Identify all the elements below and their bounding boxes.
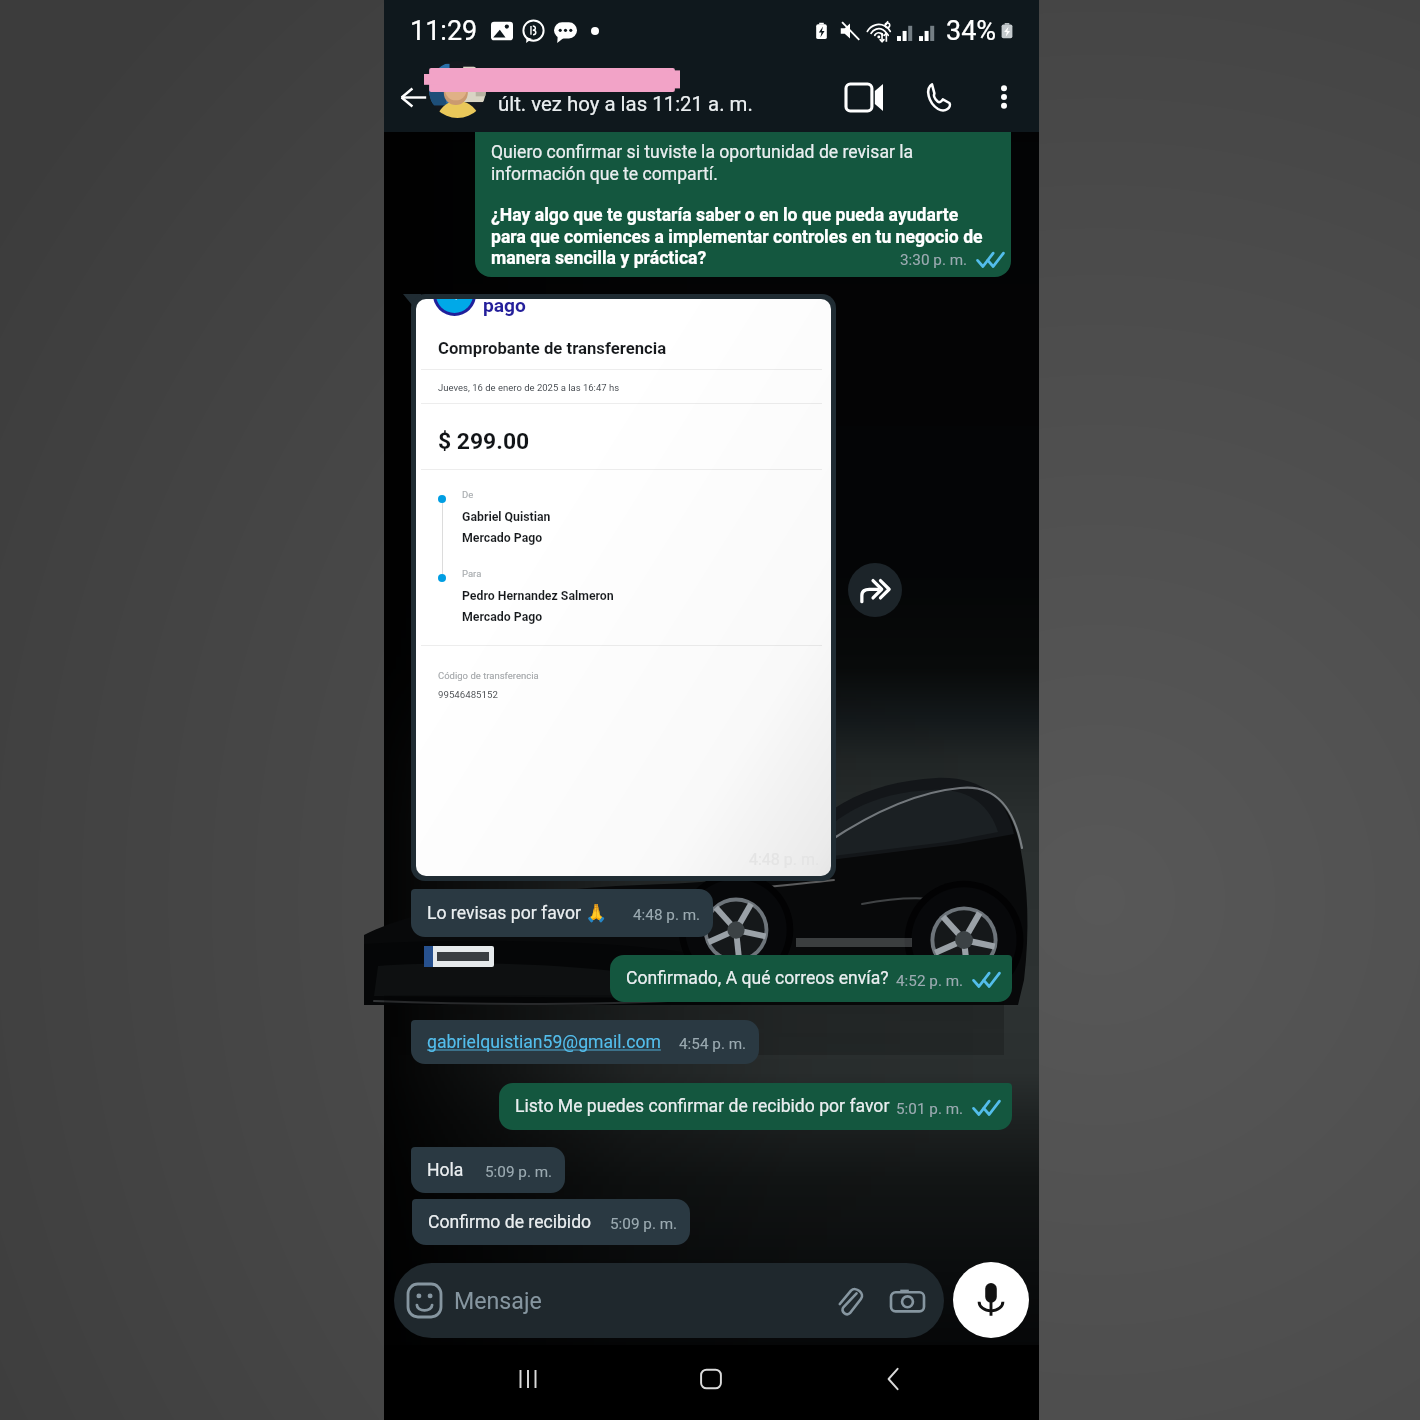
staticText: pago [483,299,526,317]
button[interactable]: Camera [886,1280,928,1322]
button[interactable]: gabrielquistian59@gmail.com [411,1020,759,1064]
staticText: 5:01 p. m. [896,1100,964,1118]
staticText: Mercado Pago [462,610,543,624]
staticText: Mercado Pago [462,531,543,545]
button[interactable]: Contact info [428,62,808,132]
button[interactable]: Hola [411,1147,565,1193]
staticText: 5:09 p. m. [485,1163,553,1181]
button[interactable]: Home [677,1345,745,1413]
button[interactable]: Quiero confirmar si tuviste la oportunid… [475,119,1011,277]
button[interactable]: Voice call [914,73,962,121]
staticText: Confirmo de recibido [428,1212,592,1233]
staticText: 4:52 p. m. [896,972,964,990]
button[interactable]: Forward [848,563,902,617]
button[interactable]: pago [416,299,831,876]
staticText: 99546485152 [438,689,498,700]
staticText: 34% [946,15,997,47]
staticText: Gabriel Quistian [462,510,551,524]
staticText: 4:54 p. m. [679,1035,747,1053]
button[interactable]: Confirmado, A qué correos envía? [610,955,1012,1002]
staticText: 5:09 p. m. [610,1215,678,1233]
staticText: Pedro Hernandez Salmeron [462,589,614,603]
button[interactable]: Attach [827,1280,869,1322]
button[interactable]: Back [860,1345,928,1413]
staticText: Confirmado, A qué correos envía? [626,968,889,989]
staticText: Para [462,568,482,579]
staticText: últ. vez hoy a las 11:21 a. m. [498,92,753,116]
staticText: Jueves, 16 de enero de 2025 a las 16:47 … [438,382,620,393]
button[interactable]: Lo revisas por favor 🙏 [411,889,713,937]
staticText: Hola [427,1160,464,1181]
staticText: Listo Me puedes confirmar de recibido po… [515,1096,890,1117]
button[interactable]: Voice message [953,1262,1029,1338]
staticText: Código de transferencia [438,670,539,681]
button[interactable]: Listo Me puedes confirmar de recibido po… [499,1083,1012,1130]
staticText: 3:30 p. m. [900,251,968,269]
staticText: Lo revisas por favor 🙏 [427,903,608,924]
staticText: Comprobante de transferencia [438,339,667,359]
button[interactable]: Video call [840,73,888,121]
staticText: 4:48 p. m. [633,906,701,924]
button[interactable]: Confirmo de recibido [412,1199,690,1245]
staticText: Mensaje [454,1287,542,1314]
button[interactable]: Back [389,73,437,121]
staticText: 4:48 p. m. [749,850,820,869]
staticText: De [462,489,474,500]
button[interactable]: More options [980,73,1028,121]
staticText: 11:29 [410,15,478,47]
button[interactable]: Mensaje [394,1263,944,1338]
staticText: $ 299.00 [438,428,530,455]
staticText: gabrielquistian59@gmail.com [427,1032,661,1053]
button[interactable]: Recent apps [494,1345,562,1413]
staticText: Quiero confirmar si tuviste la oportunid… [491,142,989,184]
staticText: ¿Hay algo que te gustaría saber o en lo … [491,205,989,268]
